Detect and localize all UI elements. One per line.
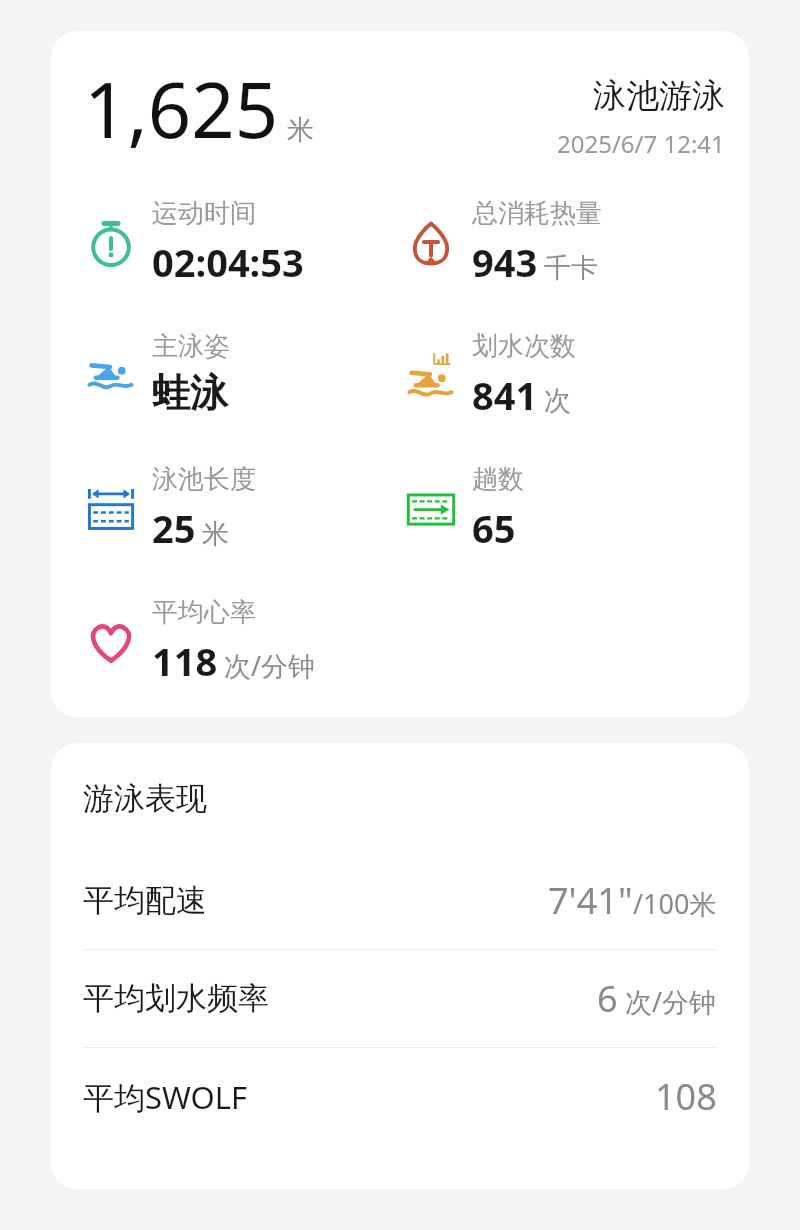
- staticText: 主泳姿: [152, 330, 230, 363]
- button[interactable]: 平均心率: [84, 596, 316, 687]
- staticText: /100米: [633, 885, 717, 922]
- staticText: 米: [202, 517, 229, 551]
- staticText: 1,625: [84, 57, 279, 161]
- button[interactable]: 趟数: [404, 463, 524, 554]
- staticText: 划水次数: [472, 330, 576, 363]
- button[interactable]: 泳池长度: [84, 463, 256, 554]
- staticText: 平均SWOLF: [83, 1076, 655, 1118]
- staticText: 25: [152, 502, 196, 554]
- staticText: 千卡: [544, 251, 598, 285]
- staticText: 108: [655, 1072, 717, 1121]
- button[interactable]: 运动时间: [84, 197, 304, 288]
- button[interactable]: 总消耗热量: [404, 197, 602, 288]
- staticText: 平均划水频率: [83, 979, 597, 1018]
- staticText: 次/分钟: [618, 983, 717, 1020]
- staticText: 次/分钟: [224, 647, 316, 684]
- staticText: 943: [472, 236, 538, 288]
- staticText: 米: [287, 113, 314, 147]
- staticText: 总消耗热量: [472, 197, 602, 230]
- staticText: 平均配速: [83, 881, 548, 920]
- staticText: 泳池长度: [152, 463, 256, 496]
- other: 主泳姿: [84, 347, 138, 401]
- staticText: 蛙泳: [152, 369, 228, 417]
- button[interactable]: 1,625: [51, 31, 749, 717]
- button[interactable]: 主泳姿: [84, 330, 230, 417]
- other: 划水次数: [404, 349, 458, 403]
- staticText: 运动时间: [152, 197, 256, 230]
- staticText: 次: [544, 384, 571, 418]
- other: 趟数: [404, 482, 458, 536]
- staticText: 7'41": [548, 876, 633, 925]
- button[interactable]: 平均划水频率: [83, 950, 717, 1047]
- staticText: 泳池游泳: [593, 75, 725, 117]
- staticText: 841: [472, 369, 538, 421]
- staticText: 65: [472, 502, 516, 554]
- staticText: 2025/6/7 12:41: [557, 127, 725, 160]
- staticText: 平均心率: [152, 596, 256, 629]
- other: 平均心率: [84, 615, 138, 669]
- button[interactable]: 平均SWOLF: [83, 1048, 717, 1145]
- other: 运动时间: [84, 216, 138, 270]
- button[interactable]: 划水次数: [404, 330, 576, 421]
- staticText: 118: [152, 635, 218, 687]
- other: 泳池长度: [84, 482, 138, 536]
- staticText: 02:04:53: [152, 236, 304, 288]
- staticText: 6: [597, 974, 618, 1023]
- other: 总消耗热量: [404, 216, 458, 270]
- button[interactable]: 平均配速: [83, 852, 717, 949]
- staticText: 游泳表现: [83, 779, 207, 818]
- staticText: 趟数: [472, 463, 524, 496]
